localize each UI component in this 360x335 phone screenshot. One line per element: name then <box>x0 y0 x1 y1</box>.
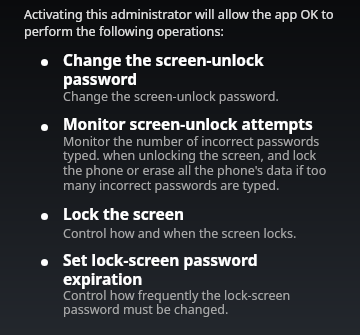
staticText: Set lock-screen password expiration <box>63 249 258 289</box>
staticText: Monitor screen-unlock attempts <box>63 113 313 134</box>
staticText: Control how and when the screen locks. <box>63 225 297 242</box>
staticText: Lock the screen <box>63 203 185 224</box>
staticText: Activating this administrator will allow… <box>24 6 334 39</box>
staticText: Change the screen-unlock password <box>63 49 264 89</box>
staticText: Change the screen-unlock password. <box>63 88 279 105</box>
staticText: Control how frequently the lock-screen p… <box>63 287 291 318</box>
staticText: Monitor the number of incorrect password… <box>63 133 327 194</box>
